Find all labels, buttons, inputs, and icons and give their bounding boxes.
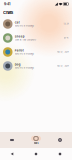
staticText: Chats bbox=[33, 142, 38, 144]
button[interactable]: People bbox=[0, 132, 24, 148]
staticText: Dog bbox=[15, 63, 21, 66]
button[interactable]: Sheep bbox=[0, 31, 72, 45]
button[interactable]: Home bbox=[24, 148, 48, 160]
button[interactable]: Cat bbox=[0, 17, 72, 31]
button[interactable]: Parrot bbox=[0, 45, 72, 59]
button[interactable]: Chats bbox=[24, 132, 48, 148]
staticText: Send me a message bbox=[15, 67, 34, 69]
staticText: 9:41 bbox=[4, 2, 10, 6]
button[interactable]: Recents bbox=[48, 148, 72, 160]
staticText: 10:24 bbox=[63, 23, 68, 25]
staticText: Cat bbox=[15, 21, 20, 24]
staticText: Sheep bbox=[15, 35, 25, 38]
staticText: 09:41 bbox=[63, 37, 68, 39]
button[interactable]: Back bbox=[0, 148, 24, 160]
staticText: Feb 07, 2024 bbox=[56, 65, 68, 67]
staticText: Send me a message bbox=[15, 53, 34, 55]
button[interactable]: Settings bbox=[48, 132, 72, 148]
staticText: Feb 07, 2024 bbox=[56, 51, 68, 53]
staticText: Send me a message bbox=[15, 25, 34, 27]
staticText: Chats bbox=[3, 10, 13, 15]
staticText: Parrot bbox=[15, 49, 24, 52]
staticText: Look at this cool photo bbox=[15, 39, 36, 41]
button[interactable]: Dog bbox=[0, 59, 72, 73]
